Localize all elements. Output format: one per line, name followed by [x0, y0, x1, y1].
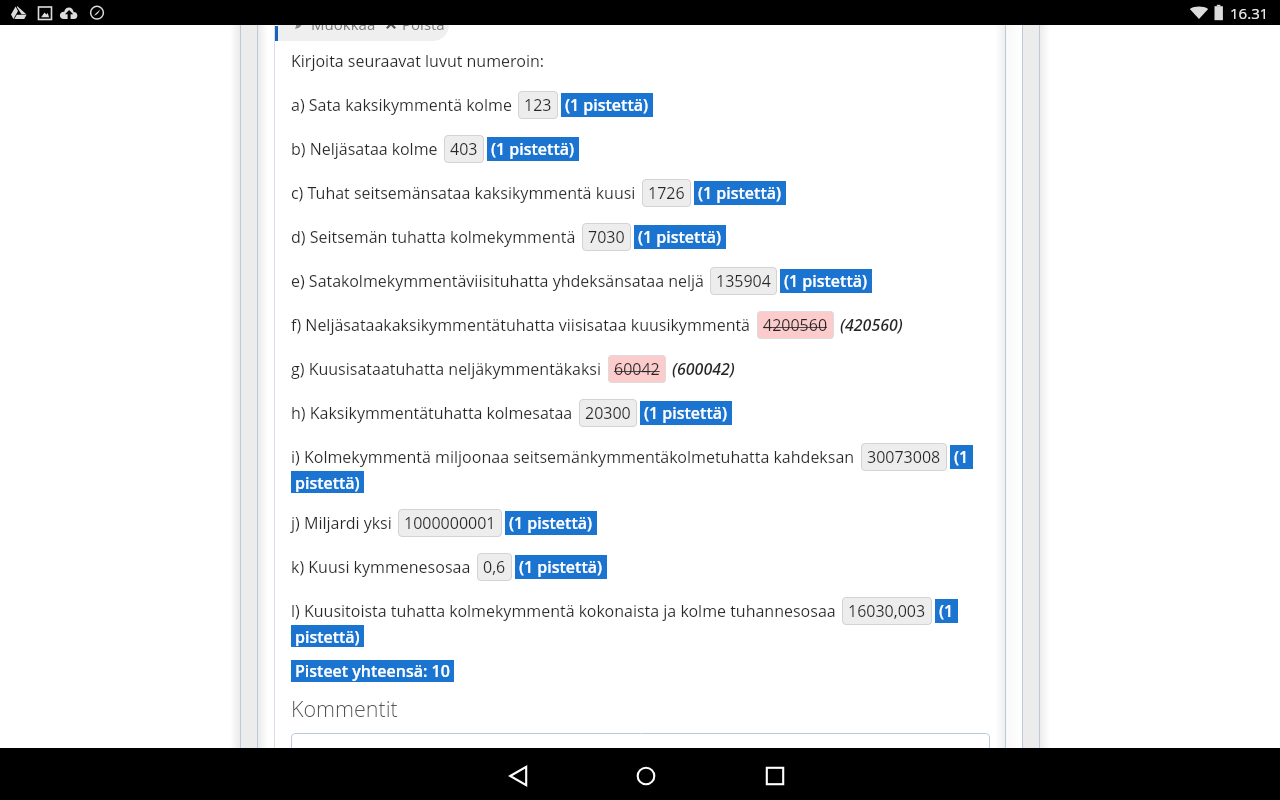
staticText: Kommentit: [291, 694, 398, 723]
staticText: d) Seitsemän tuhatta kolmekymmentä: [291, 226, 576, 248]
staticText: (1 pistettä): [565, 94, 649, 116]
staticText: b) Neljäsataa kolme: [291, 138, 438, 160]
button[interactable]: Home: [598, 748, 694, 800]
staticText: c) Tuhat seitsemänsataa kaksikymmentä ku…: [291, 182, 636, 204]
staticText: Kirjoita seuraavat luvut numeroin:: [291, 50, 545, 72]
staticText: i) Kolmekymmentä miljoonaa seitsemänkymm…: [291, 446, 855, 468]
staticText: k) Kuusi kymmenesosaa: [291, 556, 471, 578]
staticText: 30073008: [867, 446, 941, 468]
button[interactable]: Back: [470, 748, 566, 800]
staticText: 16030,003: [848, 600, 926, 622]
staticText: 1000000001: [404, 512, 496, 534]
staticText: f) Neljäsataakaksikymmentätuhatta viisis…: [291, 314, 751, 336]
button[interactable]: Muokkaa: [277, 9, 449, 41]
staticText: j) Miljardi yksi: [291, 512, 392, 534]
staticText: e) Satakolmekymmentäviisituhatta yhdeksä…: [291, 270, 704, 292]
staticText: 403: [450, 138, 478, 160]
staticText: (1 pistettä): [698, 182, 782, 204]
staticText: 1726: [648, 182, 685, 204]
button[interactable]: Recent apps: [727, 748, 823, 800]
staticText: a) Sata kaksikymmentä kolme: [291, 94, 512, 116]
staticText: (1 pistettä): [644, 402, 728, 424]
staticText: l) Kuusitoista tuhatta kolmekymmentä kok…: [291, 600, 836, 622]
staticText: (1: [954, 446, 969, 468]
staticText: 16.31: [1230, 3, 1269, 23]
staticText: 135904: [716, 270, 771, 292]
staticText: 4200560: [763, 314, 828, 336]
staticText: (420560): [840, 314, 903, 336]
staticText: (1 pistettä): [784, 270, 868, 292]
staticText: g) Kuusisataatuhatta neljäkymmentäkaksi: [291, 358, 602, 380]
staticText: 123: [524, 94, 552, 116]
staticText: (1 pistettä): [638, 226, 722, 248]
staticText: Pisteet yhteensä: 10: [295, 660, 450, 682]
staticText: h) Kaksikymmentätuhatta kolmesataa: [291, 402, 573, 424]
staticText: (600042): [672, 358, 735, 380]
staticText: Muokkaa: [311, 14, 376, 34]
staticText: (1 pistettä): [519, 556, 603, 578]
staticText: 7030: [588, 226, 625, 248]
staticText: 20300: [585, 402, 631, 424]
staticText: (1 pistettä): [491, 138, 575, 160]
staticText: Poista: [402, 14, 445, 34]
staticText: 60042: [614, 358, 660, 380]
staticText: (1: [939, 600, 954, 622]
staticText: 0,6: [483, 556, 506, 578]
button[interactable]: [291, 733, 990, 793]
staticText: pistettä): [295, 626, 360, 646]
staticText: pistettä): [295, 472, 360, 492]
staticText: (1 pistettä): [509, 512, 593, 534]
